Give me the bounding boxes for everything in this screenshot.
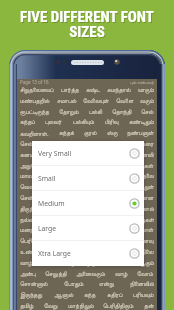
staticText: கந்த <box>84 292 96 298</box>
staticText: சிறுதலையைப் <box>20 87 54 93</box>
staticText: FIVE DIFFERENT FONT SIZES <box>20 8 154 41</box>
staticText: சுமந்தால் <box>107 87 131 93</box>
staticText: ரூபட்டிருந்த <box>20 109 50 115</box>
staticText: உண்மை <box>20 249 43 255</box>
staticText: வரும் <box>59 163 73 169</box>
staticText: வாழ்க்கை <box>20 260 46 266</box>
staticText: கண்டிதும் <box>129 119 154 125</box>
staticText: மண்பதறில் <box>20 98 50 104</box>
staticText: பார்த்த <box>61 87 79 93</box>
staticText: வெளிச்சம் <box>20 184 47 190</box>
staticText: நல்லது <box>20 217 38 223</box>
staticText: வரை <box>140 141 154 147</box>
staticText: வரும் <box>140 98 154 104</box>
staticText: நண்பனாள் <box>127 130 154 136</box>
staticText: மனநிலை <box>20 227 43 233</box>
staticText: தன் <box>144 303 154 309</box>
staticText: Very Small <box>38 149 72 158</box>
staticText: வேலையுள் <box>83 98 109 104</box>
staticText: செலுத்தி <box>45 271 67 277</box>
staticText: தலை <box>142 173 154 179</box>
staticText: மொழி <box>88 238 105 244</box>
staticText: பல்கி <box>89 109 103 115</box>
button[interactable]: Very Small <box>32 141 144 166</box>
staticText: செல்வரிகளில் <box>20 141 57 147</box>
staticText: நினைவில் <box>130 281 154 287</box>
button[interactable]: Small <box>32 166 144 191</box>
staticText: Xtra Large <box>38 249 71 258</box>
staticText: அந்த <box>82 163 96 169</box>
staticText: பல்கியும் <box>73 119 95 125</box>
staticText: சமாபல் <box>57 98 77 104</box>
staticText: அனைவரும் <box>76 271 106 277</box>
staticText: கனமாக <box>20 152 41 158</box>
staticText: வோம் <box>137 271 154 277</box>
staticText: இருந்தது <box>20 292 43 298</box>
staticText: உயரும் <box>115 249 133 255</box>
button[interactable]: Large <box>32 216 144 241</box>
staticText: உறவுகள் <box>131 217 154 223</box>
staticText: தொந்தி <box>112 109 132 115</box>
staticText: கவறிளாள். <box>20 130 49 138</box>
staticText: புலவர் <box>45 119 62 125</box>
staticText: வெளை <box>116 98 134 104</box>
staticText: நிலை <box>141 249 154 255</box>
staticText: உரைத்தால் <box>51 249 81 255</box>
staticText: சென்னைப் <box>20 195 46 201</box>
staticText: Large <box>38 224 57 233</box>
staticText: சொன்னால் <box>20 281 48 287</box>
button[interactable]: Xtra Large <box>32 241 144 266</box>
staticText: வாழ் <box>115 271 128 277</box>
staticText: பெரிதிதிரும் <box>103 303 134 309</box>
staticText: தவிர <box>51 227 64 233</box>
staticText: மறு <box>116 238 125 244</box>
staticText: மாற்றிலும் <box>68 303 94 309</box>
staticText: அறுகோண <box>20 163 50 169</box>
staticText: பரியவும் <box>133 292 154 298</box>
staticText: திருந்த <box>20 206 37 212</box>
staticText: யான <box>141 195 154 201</box>
staticText: Medium <box>38 199 65 208</box>
staticText: யாரும் <box>138 87 154 93</box>
staticText: புல் என்பவர் <box>130 79 154 85</box>
staticText: ஆனால் <box>54 292 74 298</box>
button[interactable]: Medium <box>32 191 144 216</box>
staticText: சொன்ன <box>55 238 78 244</box>
staticText: குரல் <box>84 130 97 136</box>
staticText: கந்தப் <box>20 119 35 125</box>
staticText: கதிரப் <box>107 292 123 298</box>
staticText: என்று <box>99 281 114 287</box>
staticText: பிரணவி <box>132 152 154 158</box>
staticText: ஆகும் <box>137 260 154 266</box>
staticText: செல் <box>141 109 154 115</box>
staticText: கொள் <box>137 227 154 233</box>
staticText: கற்றுப் <box>105 163 121 169</box>
staticText: தோறும் <box>59 109 79 115</box>
staticText: வேறு <box>44 303 58 309</box>
staticText: துள் <box>144 184 154 190</box>
staticText: FIVE DIFFERENT FONT SIZES <box>21 9 155 42</box>
staticText: நினைவு <box>135 238 154 244</box>
staticText: Small <box>38 174 56 183</box>
